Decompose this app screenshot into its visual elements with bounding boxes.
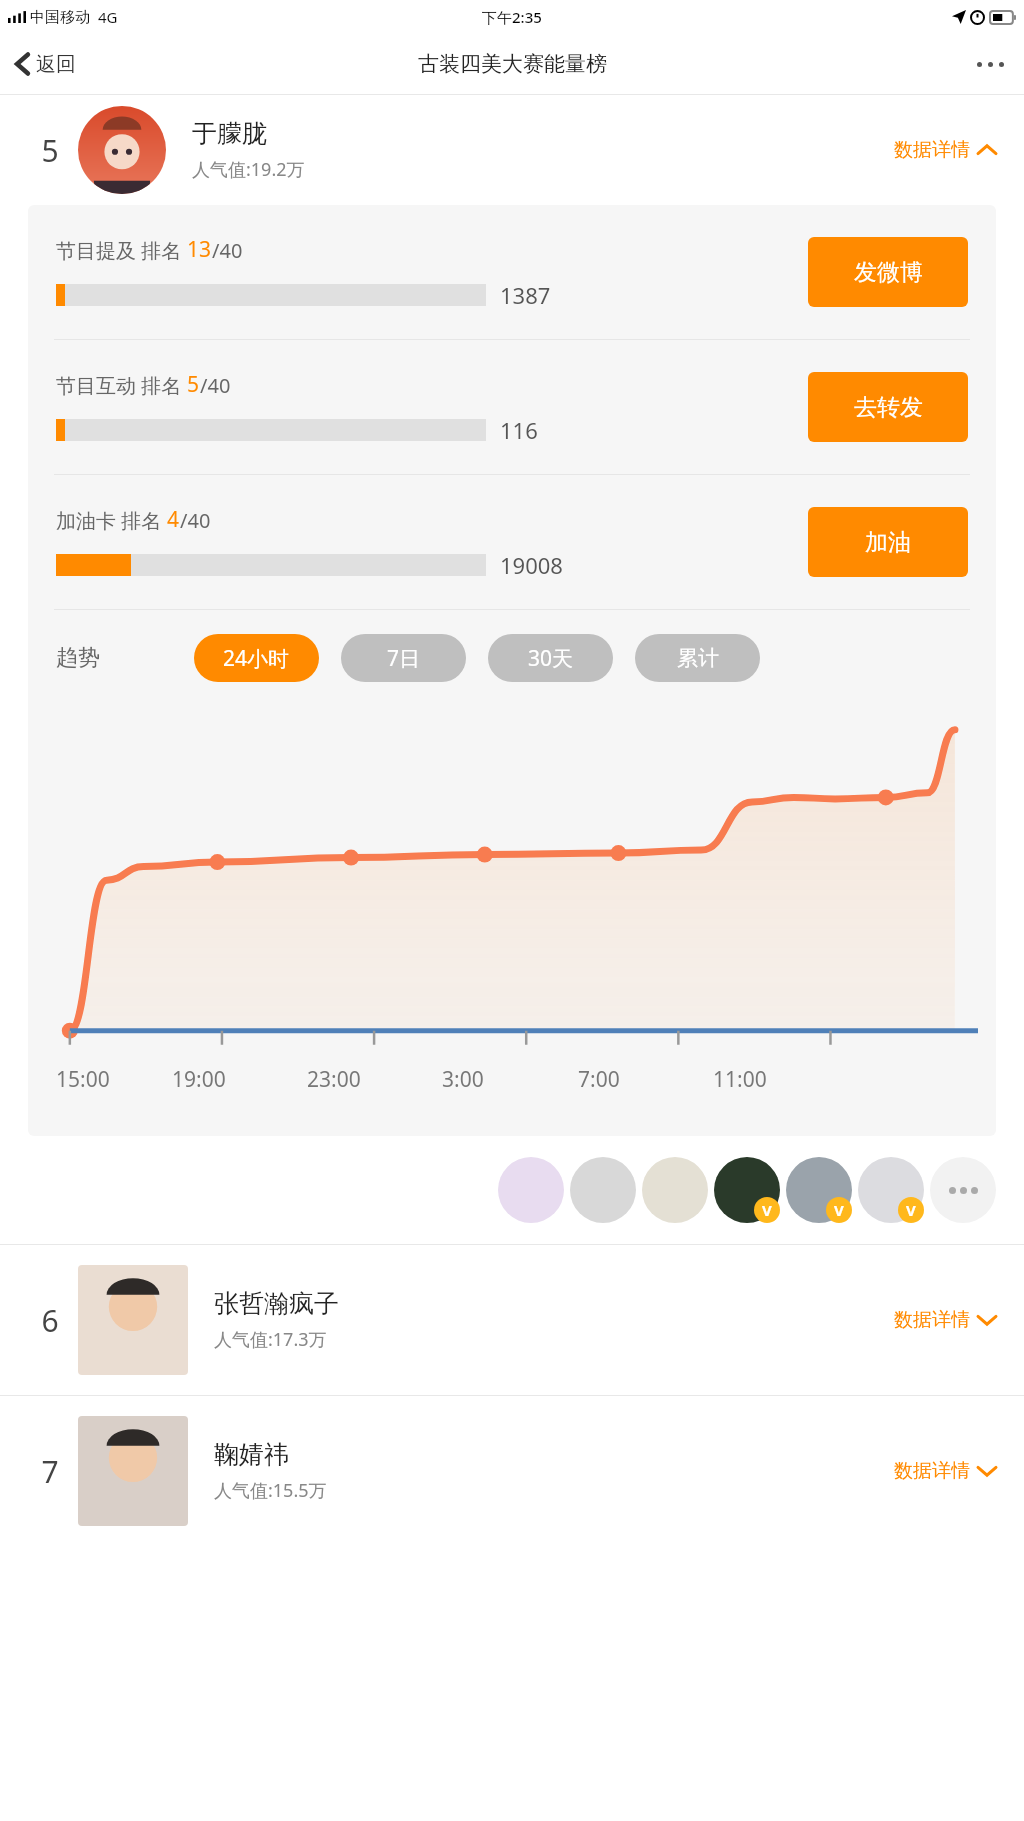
staticText: 30天 <box>528 644 574 673</box>
button[interactable]: 30天 <box>488 634 613 682</box>
staticText: 13 <box>187 235 212 264</box>
button[interactable]: More options <box>957 46 1024 83</box>
button[interactable]: 7日 <box>341 634 466 682</box>
button[interactable]: Fan avatar <box>858 1157 924 1223</box>
button[interactable]: Fan avatar <box>498 1157 564 1223</box>
staticText: V <box>762 1200 772 1220</box>
staticText: 累计 <box>677 645 719 671</box>
staticText: /40 <box>180 507 211 534</box>
staticText: 人气值:17.3万 <box>214 1327 327 1352</box>
button[interactable]: 返回 <box>0 42 88 86</box>
staticText: /40 <box>200 372 231 399</box>
staticText: 张哲瀚疯子 <box>214 1288 339 1319</box>
staticText: 节目提及 排名 <box>56 237 187 264</box>
staticText: 趋势 <box>56 644 100 672</box>
staticText: 116 <box>500 415 538 445</box>
staticText: 人气值:15.5万 <box>214 1478 327 1503</box>
staticText: 5 <box>187 370 200 399</box>
button[interactable]: 6 <box>0 1245 1024 1395</box>
staticText: 数据详情 <box>894 138 970 162</box>
staticText: 23:00 <box>307 1065 361 1094</box>
staticText: 6 <box>22 1300 78 1341</box>
staticText: 1387 <box>500 280 551 310</box>
staticText: 返回 <box>36 52 76 77</box>
staticText: 人气值:19.2万 <box>192 157 305 182</box>
staticText: 发微博 <box>854 258 923 287</box>
staticText: 鞠婧祎 <box>214 1439 289 1470</box>
staticText: 7日 <box>387 644 421 673</box>
button[interactable]: 24小时 <box>194 634 319 682</box>
button[interactable]: 数据详情 <box>888 1302 1002 1338</box>
button[interactable]: Fan avatar <box>642 1157 708 1223</box>
button[interactable]: 数据详情 <box>888 1453 1002 1489</box>
staticText: /40 <box>212 237 243 264</box>
staticText: 7 <box>22 1451 78 1492</box>
staticText: 中国移动 <box>30 8 90 27</box>
button[interactable]: 5 <box>0 95 1024 205</box>
button[interactable]: 发微博 <box>808 237 968 307</box>
staticText: 24小时 <box>223 644 290 673</box>
staticText: 数据详情 <box>894 1459 970 1483</box>
staticText: 去转发 <box>854 393 923 422</box>
button[interactable]: 累计 <box>635 634 760 682</box>
staticText: V <box>906 1200 916 1220</box>
staticText: 4 <box>167 505 180 534</box>
staticText: 节目互动 排名 <box>56 372 187 399</box>
button[interactable]: 7 <box>0 1396 1024 1546</box>
staticText: 19:00 <box>172 1065 226 1094</box>
staticText: 3:00 <box>442 1065 484 1094</box>
staticText: 7:00 <box>578 1065 620 1094</box>
button[interactable]: 去转发 <box>808 372 968 442</box>
button[interactable]: More fans <box>930 1157 996 1223</box>
staticText: 19008 <box>500 550 563 580</box>
button[interactable]: Fan avatar <box>786 1157 852 1223</box>
staticText: 古装四美大赛能量榜 <box>418 51 607 77</box>
staticText: 数据详情 <box>894 1308 970 1332</box>
staticText: 15:00 <box>56 1065 110 1094</box>
staticText: 5 <box>22 130 78 171</box>
button[interactable]: Fan avatar <box>570 1157 636 1223</box>
button[interactable]: 加油 <box>808 507 968 577</box>
staticText: 下午2:35 <box>482 7 542 27</box>
staticText: 于朦胧 <box>192 118 267 149</box>
button[interactable]: Fan avatar <box>714 1157 780 1223</box>
staticText: 11:00 <box>713 1065 767 1094</box>
button[interactable]: 数据详情 <box>888 132 1002 168</box>
staticText: 加油 <box>865 528 911 557</box>
staticText: 加油卡 排名 <box>56 507 167 534</box>
staticText: V <box>834 1200 844 1220</box>
staticText: 4G <box>98 7 118 27</box>
